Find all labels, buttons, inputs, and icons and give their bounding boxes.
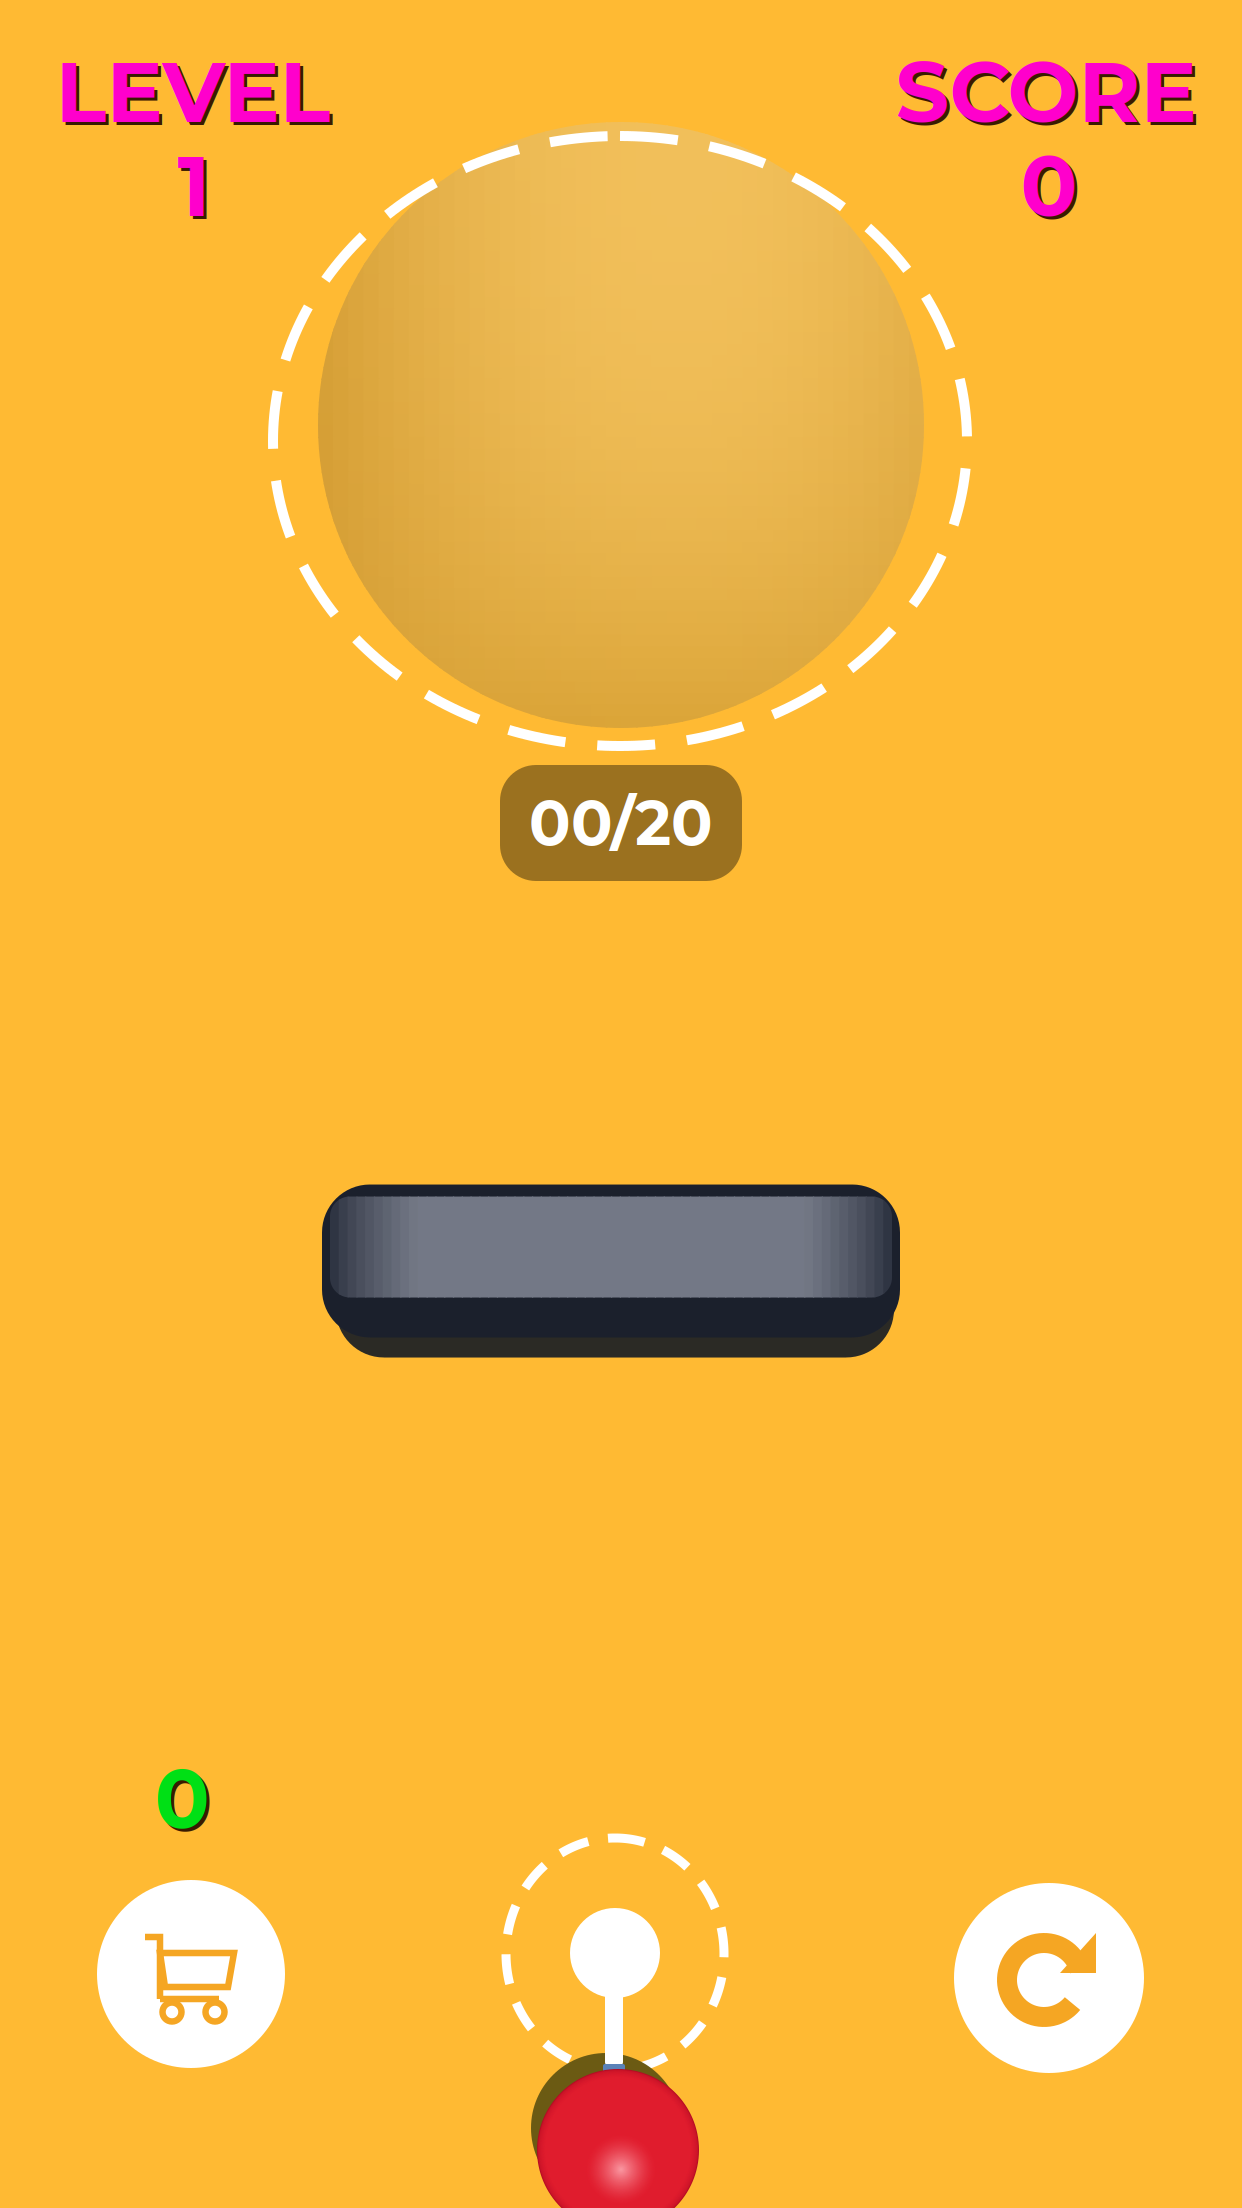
staticText: LEVEL <box>58 44 333 146</box>
button[interactable]: Shop <box>97 1880 285 2068</box>
staticText: 1 <box>177 135 210 237</box>
staticText: 0 <box>1023 138 1080 240</box>
staticText: 00/20 <box>529 786 713 860</box>
staticText: LEVEL <box>55 41 330 143</box>
staticText: 0 <box>154 1749 209 1848</box>
button[interactable]: Restart <box>954 1883 1144 2073</box>
staticText: 0 <box>157 1752 212 1851</box>
staticText: SCORE <box>898 44 1199 146</box>
staticText: 1 <box>180 138 213 240</box>
staticText: 0 <box>1020 135 1077 237</box>
staticText: SCORE <box>895 41 1196 143</box>
